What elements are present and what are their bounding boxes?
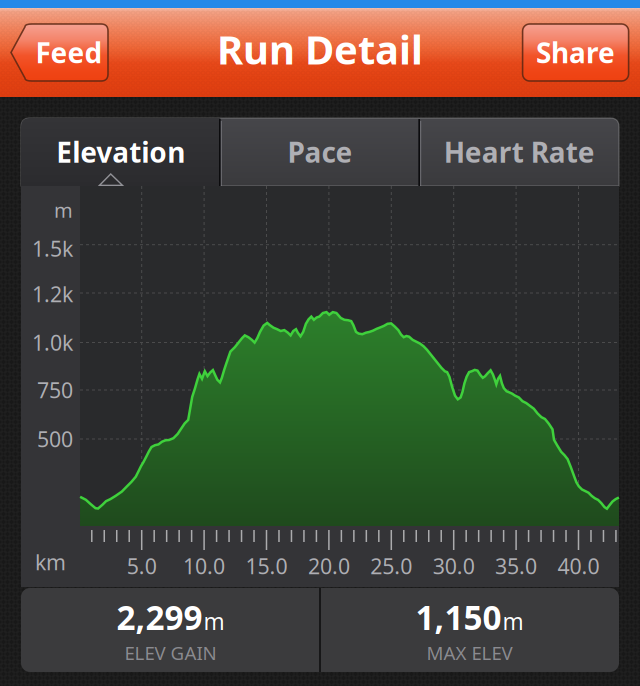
staticText: 1.5k [32,234,73,263]
staticText: 1,150 [415,595,501,639]
button[interactable]: Pace [220,118,420,186]
button[interactable]: 2,299 [21,588,320,672]
staticText: 1.0k [32,328,73,357]
staticText: Elevation [56,133,185,171]
staticText: 40.0 [557,552,599,580]
button[interactable]: Heart Rate [420,118,619,186]
staticText: m [203,606,224,636]
button[interactable]: Elevation [21,118,220,186]
staticText: km [35,548,66,576]
staticText: 10.0 [183,552,225,580]
staticText: Run Detail [217,22,423,75]
staticText: MAX ELEV [426,640,512,665]
staticText: 2,299 [116,595,202,639]
staticText: 500 [37,425,73,453]
staticText: Feed [35,34,102,71]
staticText: 1.2k [32,280,73,308]
staticText: 30.0 [433,552,475,580]
staticText: 5.0 [127,552,157,580]
staticText: m [502,606,523,636]
staticText: 750 [37,376,73,404]
staticText: Share [536,34,615,71]
button[interactable]: 1,150 [320,588,619,672]
staticText: ELEV GAIN [124,640,216,665]
staticText: Pace [287,133,352,171]
button[interactable]: Feed [11,24,108,81]
staticText: 20.0 [308,552,350,580]
button[interactable]: Share [523,24,629,81]
staticText: Heart Rate [444,133,595,171]
staticText: 25.0 [370,552,412,580]
staticText: 35.0 [495,552,537,580]
staticText: m [54,197,73,223]
staticText: 15.0 [245,552,287,580]
